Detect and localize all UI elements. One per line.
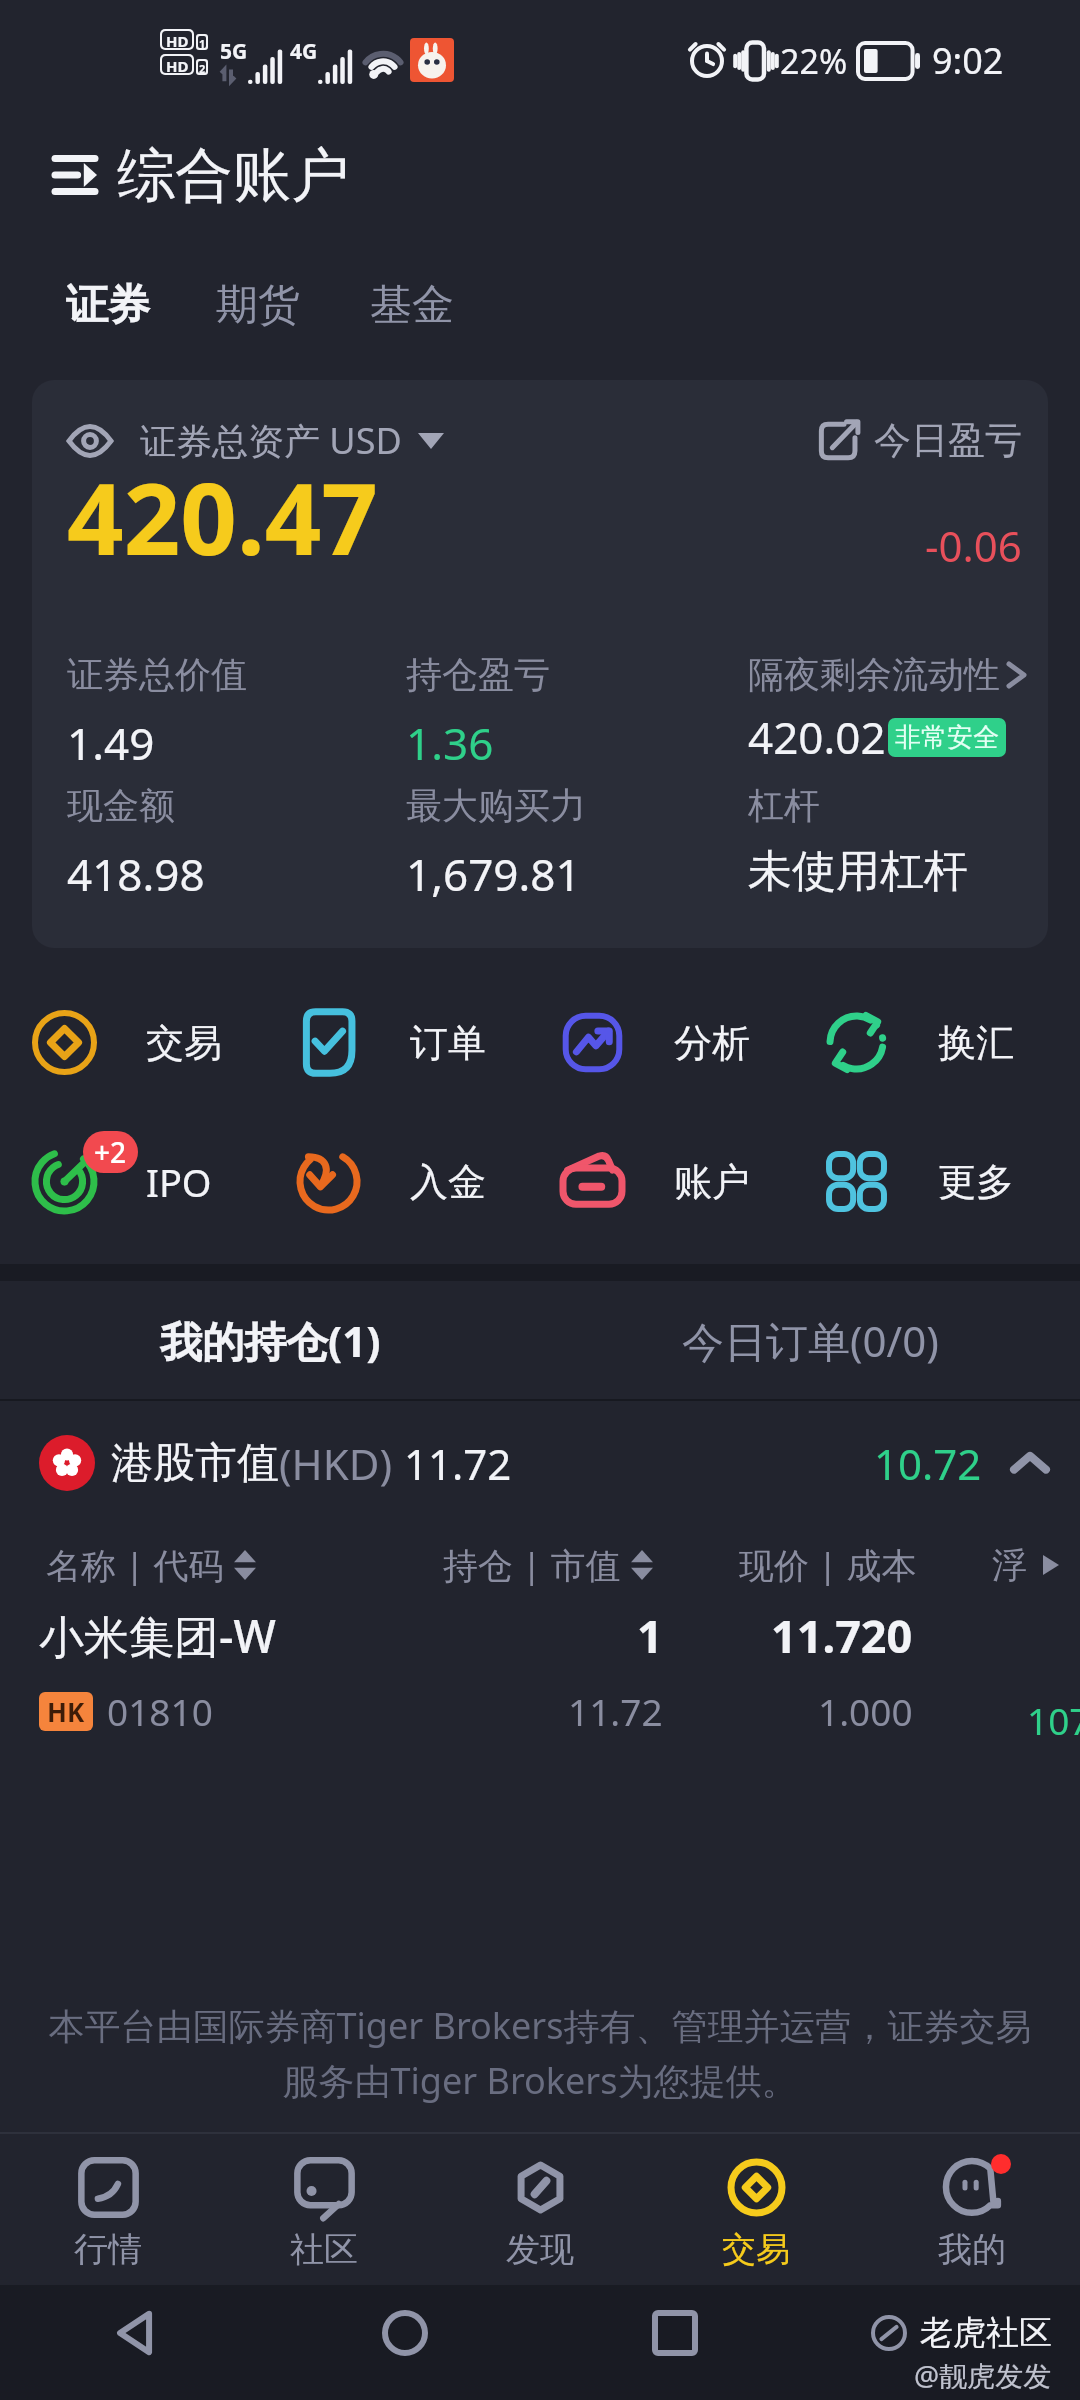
- staticText: 我的: [938, 2228, 1006, 2271]
- staticText: 发现: [506, 2228, 574, 2271]
- staticText: 更多: [938, 1158, 1014, 1206]
- staticText: 杠杆: [748, 783, 820, 828]
- staticText: 11.72: [404, 1435, 512, 1492]
- button[interactable]: 证券: [66, 279, 150, 332]
- staticText: 本平台由国际券商Tiger Brokers持有、管理并运营，证券交易 服务由Ti…: [24, 2001, 1056, 2105]
- staticText: 1.000: [818, 1686, 913, 1736]
- staticText: 浮: [992, 1543, 1027, 1587]
- staticText: 订单: [410, 1019, 486, 1067]
- button[interactable]: 行情: [0, 2148, 216, 2271]
- staticText: HK: [47, 1694, 85, 1729]
- staticText: 01810: [107, 1686, 213, 1736]
- staticText: 最大购买力: [406, 783, 586, 828]
- staticText: 小米集团-W: [39, 1605, 276, 1666]
- button[interactable]: 社区: [216, 2148, 432, 2271]
- staticText: 交易: [722, 2228, 790, 2271]
- button[interactable]: 交易: [648, 2148, 864, 2271]
- button[interactable]: 小米集团-W: [0, 1605, 1080, 1791]
- staticText: 10.72: [874, 1435, 982, 1492]
- staticText: 综合账户: [117, 139, 349, 212]
- button[interactable]: 更多: [823, 1148, 1063, 1215]
- staticText: 老虎社区: [920, 2312, 1052, 2354]
- staticText: 期货: [216, 279, 300, 332]
- button[interactable]: 期货: [216, 279, 300, 332]
- staticText: 1: [199, 36, 206, 48]
- staticText: 1,679.81: [406, 844, 581, 904]
- staticText: 11.72: [568, 1686, 663, 1736]
- staticText: 1: [637, 1605, 663, 1666]
- staticText: 今日盈亏: [874, 417, 1022, 464]
- staticText: 420.47: [67, 449, 378, 584]
- button[interactable]: 换汇: [823, 1009, 1063, 1076]
- staticText: 入金: [410, 1158, 486, 1206]
- staticText: 账户: [674, 1158, 750, 1206]
- button[interactable]: 今日订单(0/0): [540, 1312, 1080, 1369]
- staticText: IPO: [146, 1156, 212, 1208]
- staticText: 基金: [370, 279, 454, 332]
- button[interactable]: 订单: [295, 1009, 559, 1076]
- staticText: HD: [166, 31, 189, 48]
- staticText: 交易: [146, 1019, 222, 1067]
- button[interactable]: 分析: [559, 1009, 823, 1076]
- staticText: 港股市值: [111, 1437, 279, 1490]
- staticText: 未使用杠杆: [748, 844, 968, 899]
- staticText: 1.49: [67, 713, 155, 773]
- staticText: @靓虎发发: [914, 2356, 1052, 2394]
- staticText: 420.02: [748, 707, 886, 767]
- staticText: 社区: [290, 2228, 358, 2271]
- staticText: 11.720: [771, 1605, 913, 1666]
- staticText: 现金额: [67, 783, 175, 828]
- staticText: 现价 | 成本: [739, 1541, 917, 1589]
- button[interactable]: 基金: [370, 279, 454, 332]
- button[interactable]: +2: [31, 1148, 295, 1215]
- staticText: +2: [94, 1133, 127, 1171]
- staticText: 今日订单(0/0): [682, 1312, 939, 1369]
- staticText: 持仓盈亏: [406, 652, 550, 697]
- staticText: 持仓 | 市值: [443, 1541, 621, 1589]
- button[interactable]: 交易: [31, 1009, 295, 1076]
- staticText: 我的持仓(1): [160, 1312, 381, 1369]
- staticText: 行情: [74, 2228, 142, 2271]
- button[interactable]: Home: [377, 2305, 433, 2361]
- button[interactable]: 发现: [432, 2148, 648, 2271]
- button[interactable]: 账户: [559, 1148, 823, 1215]
- button[interactable]: Menu: [47, 147, 103, 203]
- staticText: 4G: [290, 37, 318, 66]
- staticText: 换汇: [938, 1019, 1014, 1067]
- staticText: 非常安全: [895, 721, 999, 754]
- button[interactable]: 入金: [295, 1148, 559, 1215]
- staticText: 1.36: [406, 713, 494, 773]
- staticText: 隔夜剩余流动性: [748, 652, 1000, 697]
- button[interactable]: 我的: [864, 2148, 1080, 2271]
- staticText: 分析: [674, 1019, 750, 1067]
- button[interactable]: Recents: [647, 2305, 703, 2361]
- staticText: 2: [199, 61, 206, 73]
- staticText: 22%: [780, 38, 848, 84]
- staticText: 9:02: [932, 36, 1004, 85]
- staticText: 5G: [220, 37, 248, 66]
- staticText: -0.06: [925, 517, 1022, 574]
- button[interactable]: 港股市值: [0, 1401, 1080, 1525]
- button[interactable]: 证券总资产 USD: [32, 380, 1048, 948]
- staticText: 107.3%: [1027, 1695, 1080, 1745]
- other: Collapse: [1010, 1448, 1050, 1478]
- staticText: 名称 | 代码: [46, 1541, 224, 1589]
- staticText: (HKD): [279, 1435, 392, 1492]
- staticText: 证券总价值: [67, 652, 247, 697]
- button[interactable]: 我的持仓(1): [0, 1312, 540, 1369]
- staticText: HD: [166, 56, 189, 73]
- button[interactable]: Back: [107, 2305, 163, 2361]
- staticText: 418.98: [67, 844, 205, 904]
- staticText: 证券总资产 USD: [140, 416, 402, 465]
- staticText: 证券: [66, 279, 150, 332]
